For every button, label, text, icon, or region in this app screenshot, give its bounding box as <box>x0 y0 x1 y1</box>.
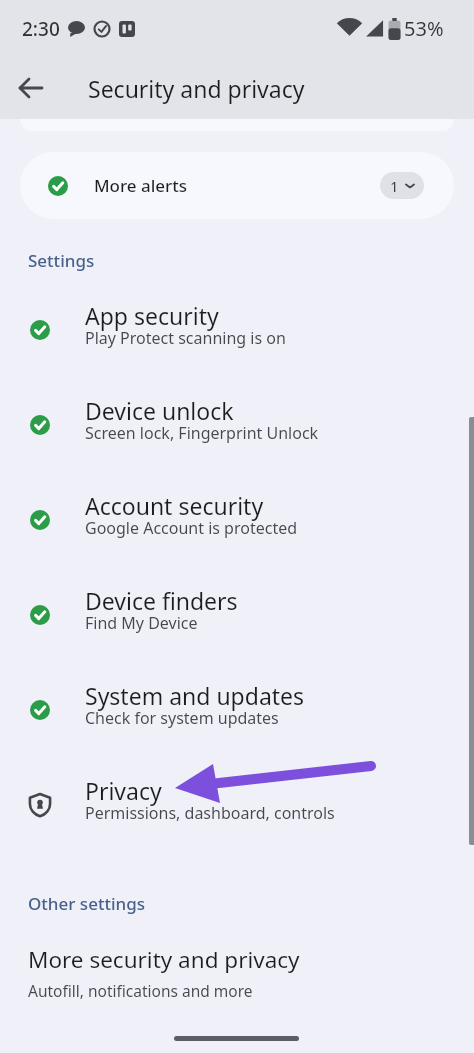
staticText: Device unlock <box>85 395 234 426</box>
staticText: Check for system updates <box>85 707 279 729</box>
staticText: Autofill, notifications and more <box>28 980 253 1001</box>
staticText: 1 <box>390 176 399 196</box>
staticText: System and updates <box>85 680 305 711</box>
staticText: Settings <box>28 249 95 272</box>
staticText: More security and privacy <box>28 944 300 975</box>
button[interactable]: Device finders <box>0 568 474 663</box>
button[interactable]: More security and privacy <box>0 944 474 1001</box>
button[interactable]: More alerts <box>20 152 454 219</box>
staticText: Permissions, dashboard, controls <box>85 802 335 824</box>
button[interactable]: 1 <box>380 172 424 199</box>
staticText: 2:30 <box>22 16 60 42</box>
staticText: Privacy <box>85 775 162 806</box>
button[interactable]: Account security <box>0 473 474 568</box>
staticText: Device finders <box>85 585 238 616</box>
button[interactable]: App security <box>0 283 474 378</box>
staticText: Find My Device <box>85 612 198 634</box>
button[interactable]: Privacy <box>0 758 474 853</box>
button[interactable] <box>174 1036 299 1041</box>
staticText: App security <box>85 300 219 331</box>
staticText: More alerts <box>94 174 188 197</box>
button[interactable] <box>0 57 62 119</box>
staticText: Screen lock, Fingerprint Unlock <box>85 422 319 444</box>
button[interactable]: System and updates <box>0 663 474 758</box>
staticText: Other settings <box>28 892 145 915</box>
staticText: 53% <box>404 15 444 42</box>
staticText: Google Account is protected <box>85 517 298 539</box>
staticText: Security and privacy <box>88 73 305 104</box>
staticText: Account security <box>85 490 264 521</box>
button[interactable]: Device unlock <box>0 378 474 473</box>
staticText: Play Protect scanning is on <box>85 327 286 349</box>
